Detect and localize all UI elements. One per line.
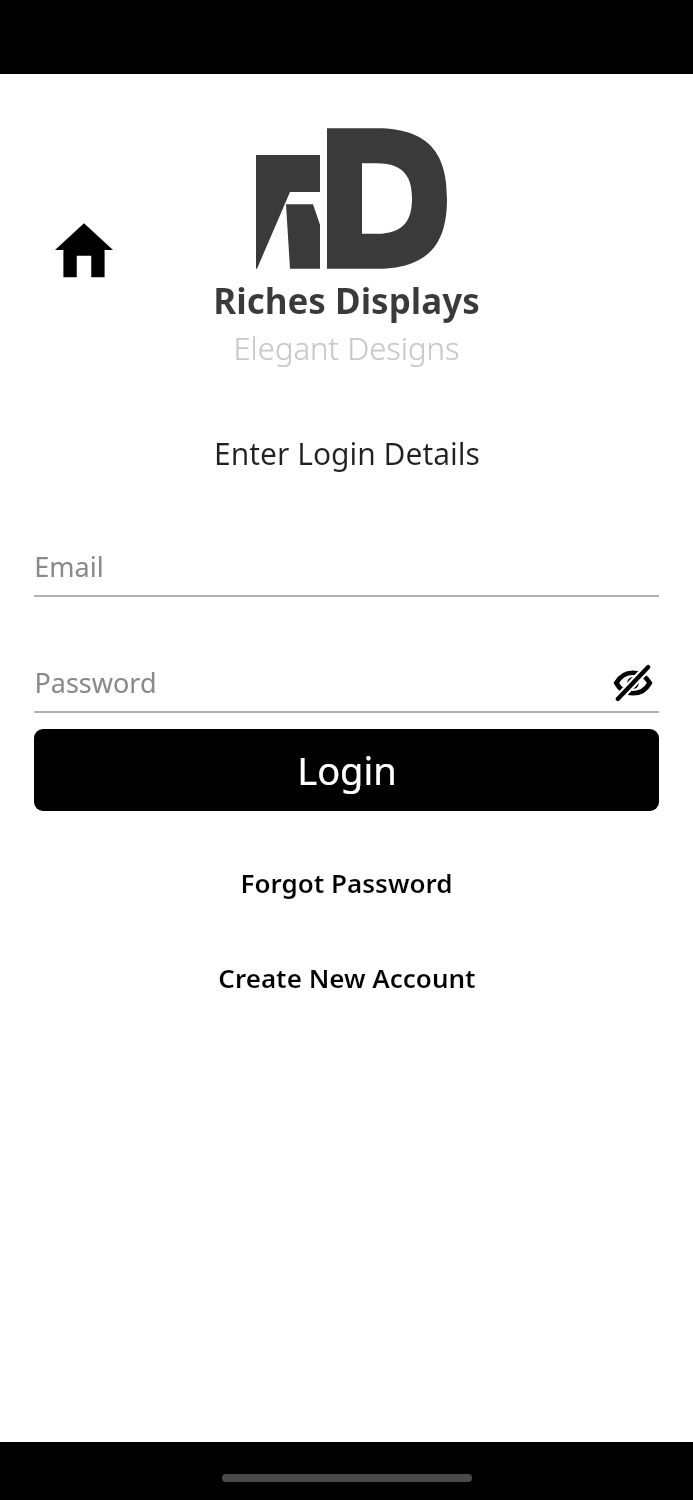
button[interactable]: Forgot Password [220,857,473,908]
button[interactable]: Home [48,214,120,286]
button[interactable]: Password [34,664,607,701]
staticText: Elegant Designs [233,327,460,369]
button[interactable]: Login [34,729,659,811]
staticText: Forgot Password [240,865,453,900]
button[interactable]: Email [34,538,659,597]
staticText: Login [297,744,397,796]
staticText: Enter Login Details [214,433,480,474]
staticText: Email [34,548,104,585]
staticText: Password [34,664,157,701]
staticText: Create New Account [218,960,476,995]
staticText: Riches Displays [213,277,480,325]
button[interactable]: Create New Account [198,952,496,1003]
button[interactable]: Show password [607,657,659,709]
